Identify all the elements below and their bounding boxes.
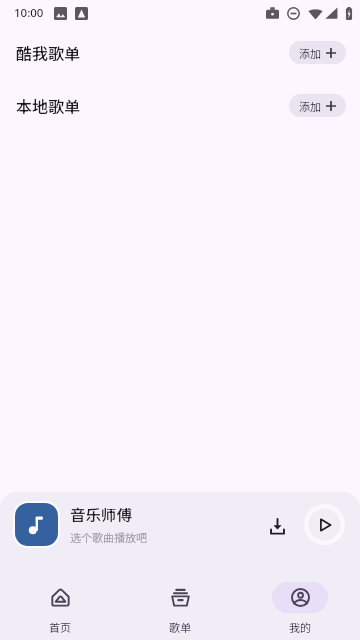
button[interactable]: 首页 (0, 582, 120, 634)
button[interactable]: 本地歌单 (0, 79, 360, 132)
staticText: 选个歌曲播放吧 (70, 529, 147, 545)
button[interactable]: Play (304, 504, 345, 545)
button[interactable]: 添加 (289, 41, 346, 64)
button[interactable]: 音乐师傅 (0, 492, 360, 556)
staticText: 音乐师傅 (70, 503, 133, 525)
staticText: 添加 (299, 98, 321, 114)
button[interactable]: Download (264, 507, 298, 541)
button[interactable]: 歌单 (120, 582, 240, 634)
staticText: 我的 (289, 619, 311, 634)
staticText: 歌单 (169, 619, 191, 634)
staticText: 10:00 (14, 5, 44, 21)
staticText: 首页 (49, 619, 71, 634)
staticText: 添加 (299, 45, 321, 61)
staticText: 本地歌单 (16, 94, 81, 117)
button[interactable]: 我的 (240, 582, 360, 634)
button[interactable]: 酷我歌单 (0, 26, 360, 79)
button[interactable]: 添加 (289, 94, 346, 117)
staticText: 酷我歌单 (16, 41, 81, 64)
